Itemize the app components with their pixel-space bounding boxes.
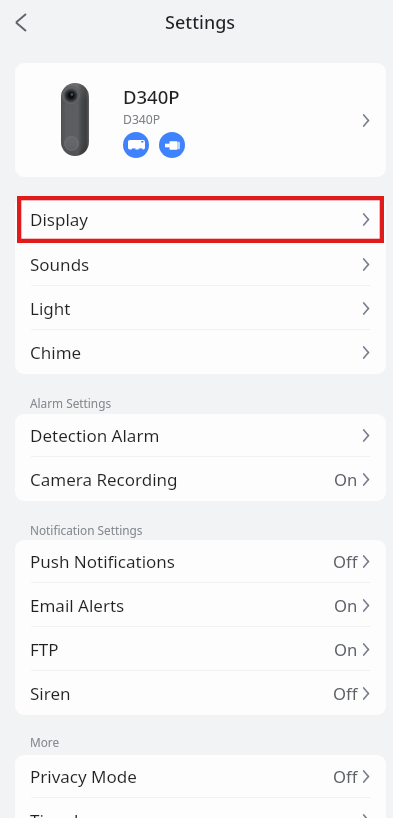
staticText: Camera Recording: [30, 468, 178, 491]
staticText: Detection Alarm: [30, 424, 160, 447]
staticText: Off: [333, 682, 358, 705]
staticText: Time Lapse: [30, 809, 121, 818]
staticText: FTP: [30, 638, 59, 661]
button[interactable]: Sounds: [15, 242, 386, 286]
button[interactable]: Chime: [15, 330, 386, 374]
button[interactable]: D340P: [15, 63, 386, 177]
staticText: Settings: [165, 10, 236, 35]
staticText: Siren: [30, 682, 71, 705]
staticText: Display: [30, 208, 88, 231]
button[interactable]: Battery status: [123, 132, 149, 158]
staticText: Push Notifications: [30, 550, 175, 573]
staticText: On: [334, 594, 358, 617]
button[interactable]: Back: [5, 6, 37, 38]
staticText: Privacy Mode: [30, 765, 137, 788]
button[interactable]: Push Notifications: [15, 540, 386, 583]
button[interactable]: Detection Alarm: [15, 414, 386, 457]
button[interactable]: Camera Recording: [15, 457, 386, 501]
staticText: D340P: [123, 84, 180, 109]
button[interactable]: Power status: [159, 132, 185, 158]
button[interactable]: Display: [15, 196, 386, 242]
staticText: Sounds: [30, 253, 90, 276]
staticText: On: [334, 638, 358, 661]
staticText: Off: [333, 550, 358, 573]
staticText: D340P: [123, 111, 161, 128]
staticText: Email Alerts: [30, 594, 125, 617]
button[interactable]: Time Lapse: [15, 798, 386, 818]
button[interactable]: Privacy Mode: [15, 755, 386, 798]
button[interactable]: Siren: [15, 671, 386, 715]
button[interactable]: FTP: [15, 627, 386, 671]
staticText: Light: [30, 297, 71, 320]
button[interactable]: Light: [15, 286, 386, 330]
staticText: More: [30, 734, 60, 750]
staticText: Alarm Settings: [30, 395, 112, 411]
staticText: Notification Settings: [30, 522, 143, 538]
staticText: Chime: [30, 341, 82, 364]
staticText: On: [334, 468, 358, 491]
staticText: Off: [333, 765, 358, 788]
button[interactable]: Email Alerts: [15, 583, 386, 627]
